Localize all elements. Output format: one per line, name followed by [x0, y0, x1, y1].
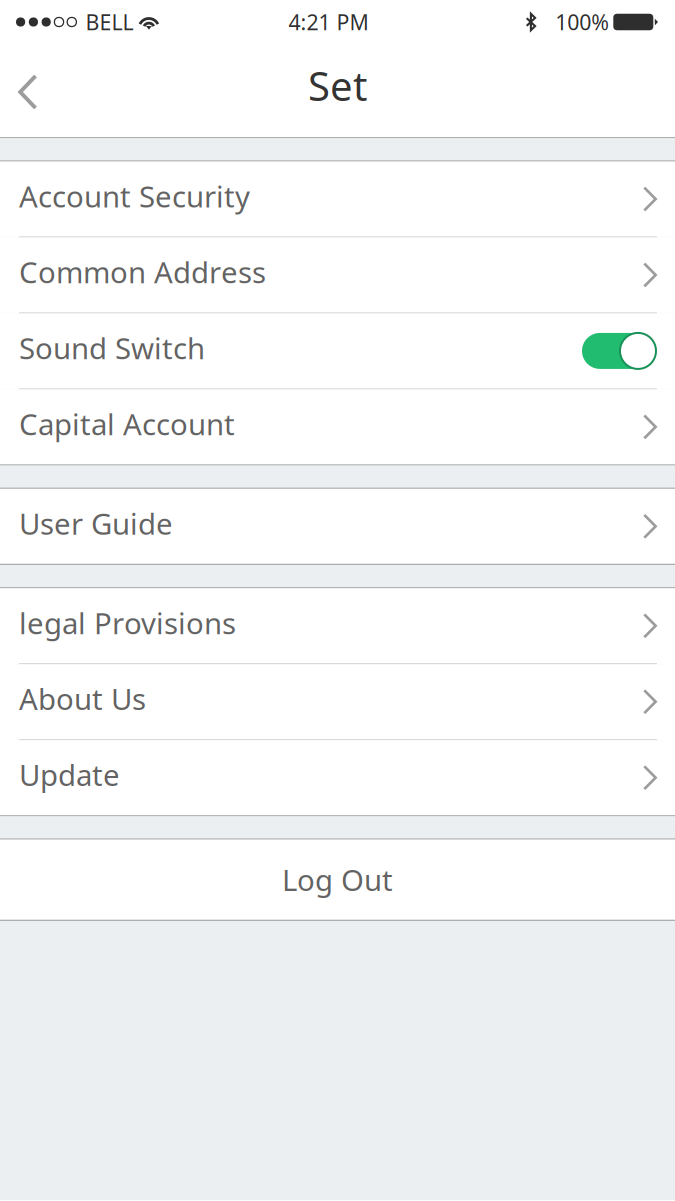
button[interactable]: Log Out [0, 840, 675, 920]
staticText: 100% [555, 8, 609, 36]
staticText: 4:21 PM [288, 8, 368, 36]
staticText: BELL [85, 8, 133, 36]
button[interactable]: Account Security [0, 162, 675, 236]
button[interactable]: User Guide [0, 489, 675, 564]
staticText: Sound Switch [19, 328, 205, 367]
staticText: Account Security [19, 176, 250, 215]
button[interactable]: Sound Switch [582, 333, 656, 369]
staticText: legal Provisions [19, 603, 236, 642]
button[interactable]: Update [0, 740, 675, 815]
button[interactable]: About Us [0, 664, 675, 739]
staticText: Update [19, 755, 120, 794]
button[interactable]: legal Provisions [0, 588, 675, 663]
button[interactable]: Back [0, 44, 62, 137]
staticText: Capital Account [19, 404, 235, 443]
staticText: Set [308, 59, 367, 112]
staticText: Common Address [19, 252, 266, 291]
staticText: User Guide [19, 504, 173, 543]
staticText: Log Out [282, 860, 393, 899]
staticText: About Us [19, 679, 146, 718]
button[interactable]: Capital Account [0, 389, 675, 464]
button[interactable]: Common Address [0, 237, 675, 312]
